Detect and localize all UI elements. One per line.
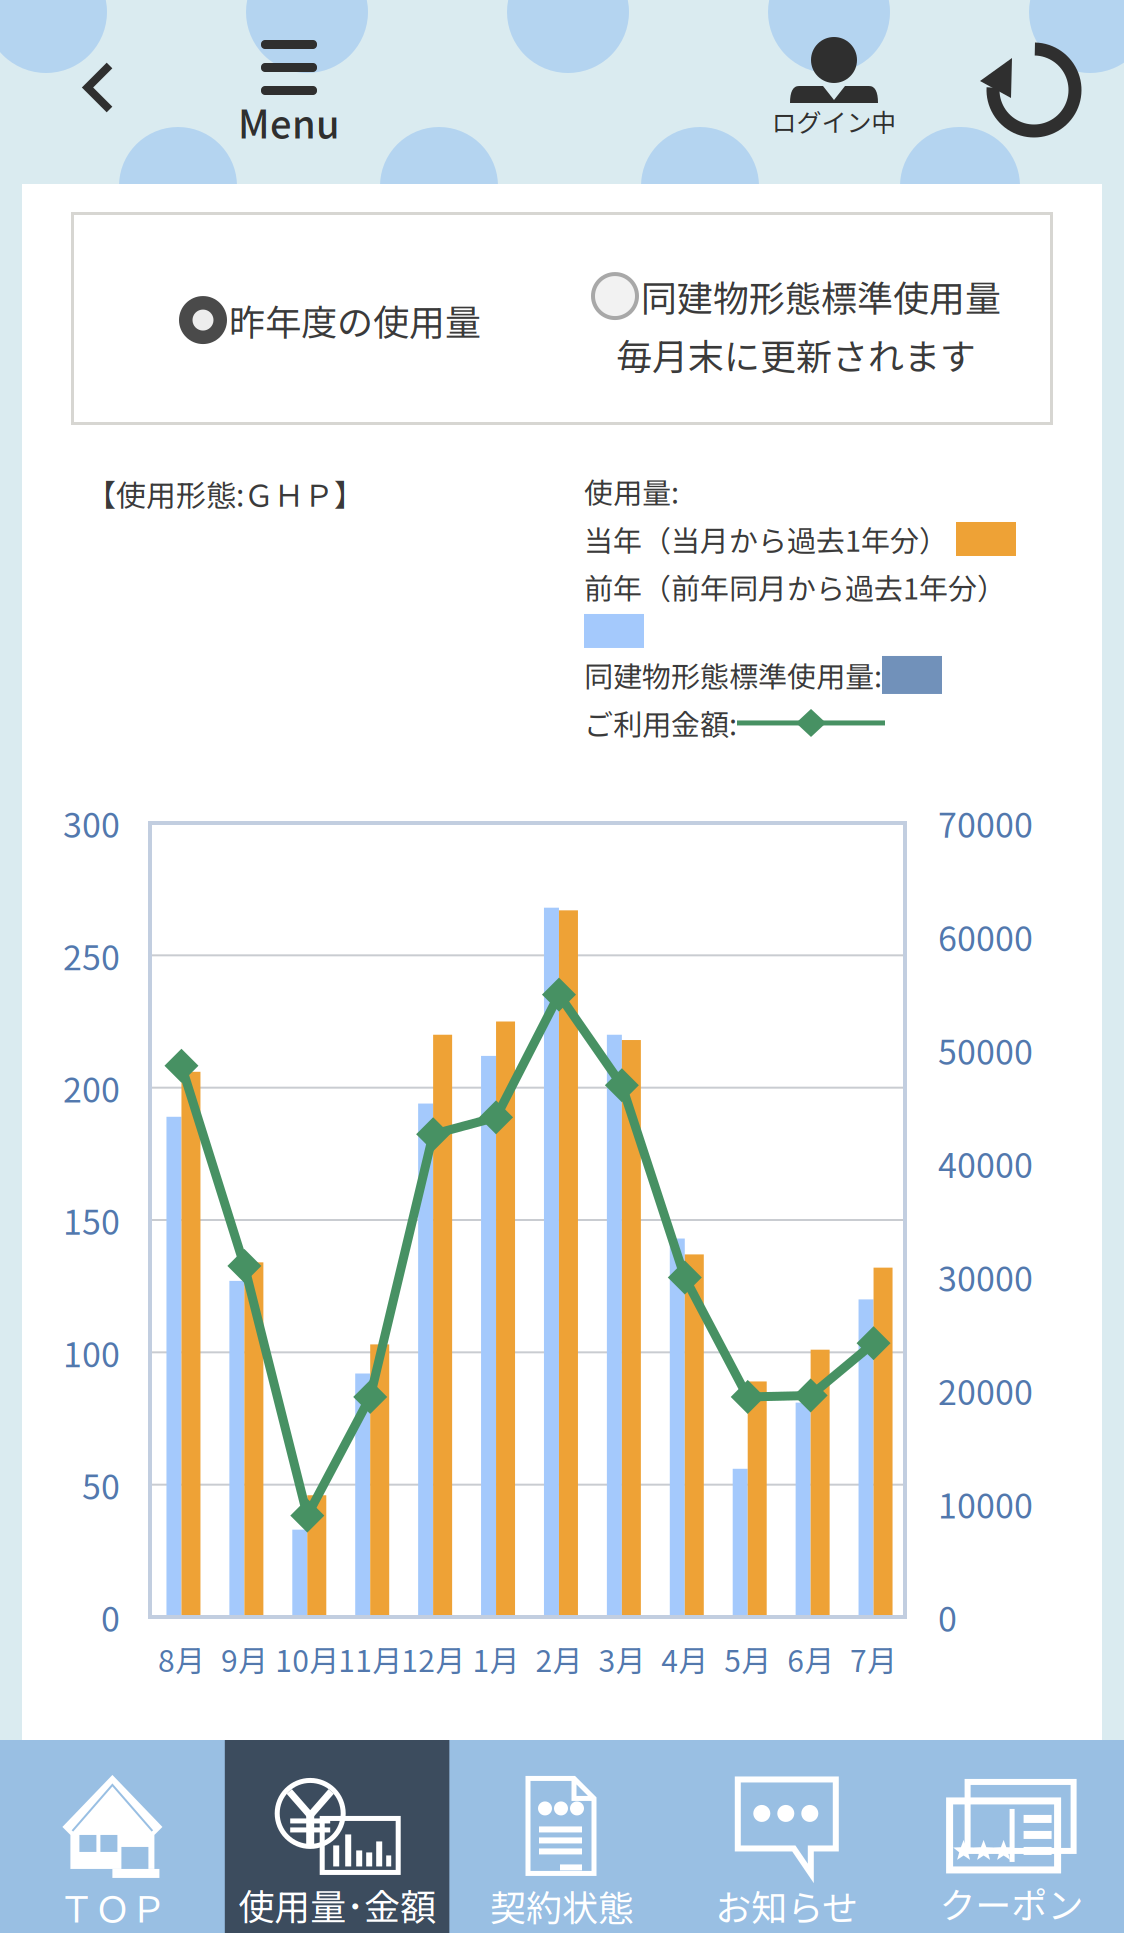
staticText: 3月 bbox=[598, 1637, 645, 1681]
staticText: 7月 bbox=[850, 1637, 897, 1681]
button[interactable]: 同建物形態標準使用量 bbox=[583, 262, 1009, 388]
button[interactable]: Menu bbox=[199, 40, 379, 156]
button[interactable]: 使用量･金額 bbox=[225, 1740, 450, 1933]
staticText: 10000 bbox=[938, 1479, 1033, 1528]
staticText: 8月 bbox=[158, 1637, 205, 1681]
button[interactable]: 更新 bbox=[962, 33, 1094, 145]
staticText: 当年（当月から過去1年分） bbox=[584, 518, 948, 560]
staticText: クーポン bbox=[940, 1877, 1084, 1929]
staticText: 50000 bbox=[938, 1025, 1033, 1074]
staticText: 20000 bbox=[938, 1365, 1033, 1415]
staticText: 昨年度の使用量 bbox=[229, 294, 481, 346]
staticText: 契約状態 bbox=[490, 1879, 634, 1931]
staticText: 50 bbox=[82, 1460, 120, 1509]
staticText: 2月 bbox=[535, 1637, 582, 1681]
staticText: 250 bbox=[63, 931, 120, 980]
staticText: 200 bbox=[63, 1063, 120, 1112]
staticText: ＴＯＰ bbox=[58, 1881, 166, 1933]
staticText: 11月 bbox=[338, 1637, 402, 1681]
button[interactable]: 昨年度の使用量 bbox=[171, 286, 489, 354]
button[interactable]: お知らせ bbox=[674, 1740, 899, 1933]
staticText: 前年（前年同月から過去1年分） bbox=[584, 566, 1006, 608]
staticText: 同建物形態標準使用量 bbox=[641, 270, 1001, 322]
staticText: ログイン中 bbox=[771, 103, 896, 139]
staticText: 【使用形態:ＧＨＰ】 bbox=[86, 472, 364, 515]
staticText: 1月 bbox=[472, 1637, 519, 1681]
staticText: 70000 bbox=[938, 798, 1033, 848]
staticText: 0 bbox=[101, 1592, 120, 1642]
staticText: 5月 bbox=[724, 1637, 771, 1681]
staticText: 使用量: bbox=[584, 470, 679, 512]
staticText: お知らせ bbox=[715, 1879, 858, 1931]
button[interactable]: 戻る bbox=[42, 32, 154, 142]
staticText: 毎月末に更新されます bbox=[616, 328, 976, 380]
button[interactable]: クーポン bbox=[899, 1740, 1124, 1933]
staticText: 150 bbox=[63, 1195, 120, 1245]
button[interactable]: ログイン中 bbox=[739, 37, 929, 149]
staticText: 0 bbox=[938, 1592, 957, 1642]
staticText: 9月 bbox=[221, 1637, 268, 1681]
button[interactable]: 契約状態 bbox=[450, 1740, 674, 1933]
staticText: 300 bbox=[63, 798, 120, 848]
staticText: 10月 bbox=[275, 1637, 339, 1681]
staticText: 12月 bbox=[401, 1637, 465, 1681]
staticText: 6月 bbox=[787, 1637, 834, 1681]
staticText: 4月 bbox=[661, 1637, 708, 1681]
staticText: 30000 bbox=[938, 1252, 1033, 1301]
staticText: ご利用金額: bbox=[584, 702, 737, 744]
button[interactable]: ＴＯＰ bbox=[0, 1740, 225, 1933]
staticText: Menu bbox=[238, 94, 340, 149]
staticText: 100 bbox=[63, 1328, 120, 1377]
staticText: 同建物形態標準使用量: bbox=[584, 654, 882, 696]
staticText: 使用量･金額 bbox=[238, 1878, 436, 1930]
staticText: 60000 bbox=[938, 912, 1033, 961]
staticText: 40000 bbox=[938, 1139, 1033, 1188]
